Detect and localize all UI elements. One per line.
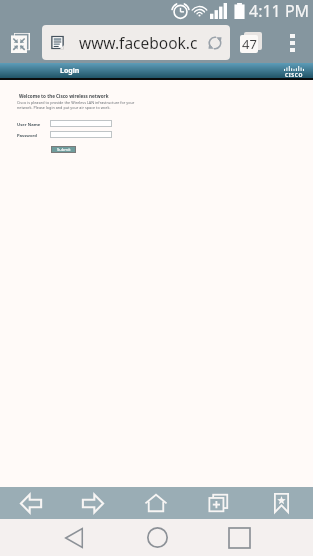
button[interactable]: Login xyxy=(47,63,93,78)
button[interactable]: Back xyxy=(0,487,62,519)
staticText: Submit xyxy=(57,147,71,152)
button[interactable]: Submit xyxy=(51,146,76,153)
button[interactable] xyxy=(50,131,112,138)
button[interactable]: www.facebook.c xyxy=(42,25,230,60)
staticText: Password xyxy=(17,133,37,139)
button[interactable]: Bookmarks xyxy=(250,487,313,519)
button[interactable]: Recent apps xyxy=(217,519,261,556)
staticText: Welcome to the Cisco wireless network xyxy=(19,93,109,99)
button[interactable] xyxy=(50,120,112,127)
button[interactable]: More options xyxy=(277,28,307,58)
button[interactable]: Back xyxy=(52,519,96,556)
button[interactable]: Exit full screen xyxy=(6,29,34,57)
button[interactable]: Home xyxy=(135,519,179,556)
staticText: User Name xyxy=(17,122,41,128)
staticText: 4:11 PM xyxy=(249,0,310,21)
staticText: www.facebook.c xyxy=(79,32,198,53)
button[interactable]: Forward xyxy=(62,487,124,519)
button[interactable]: Tabs xyxy=(236,27,266,57)
staticText: Login xyxy=(60,66,80,76)
staticText: Cisco is pleased to provide the Wireless… xyxy=(17,100,135,110)
button[interactable]: New tab xyxy=(187,487,250,519)
staticText: 47 xyxy=(242,35,257,53)
staticText: CISCO xyxy=(285,72,303,79)
button[interactable]: Home xyxy=(124,487,187,519)
